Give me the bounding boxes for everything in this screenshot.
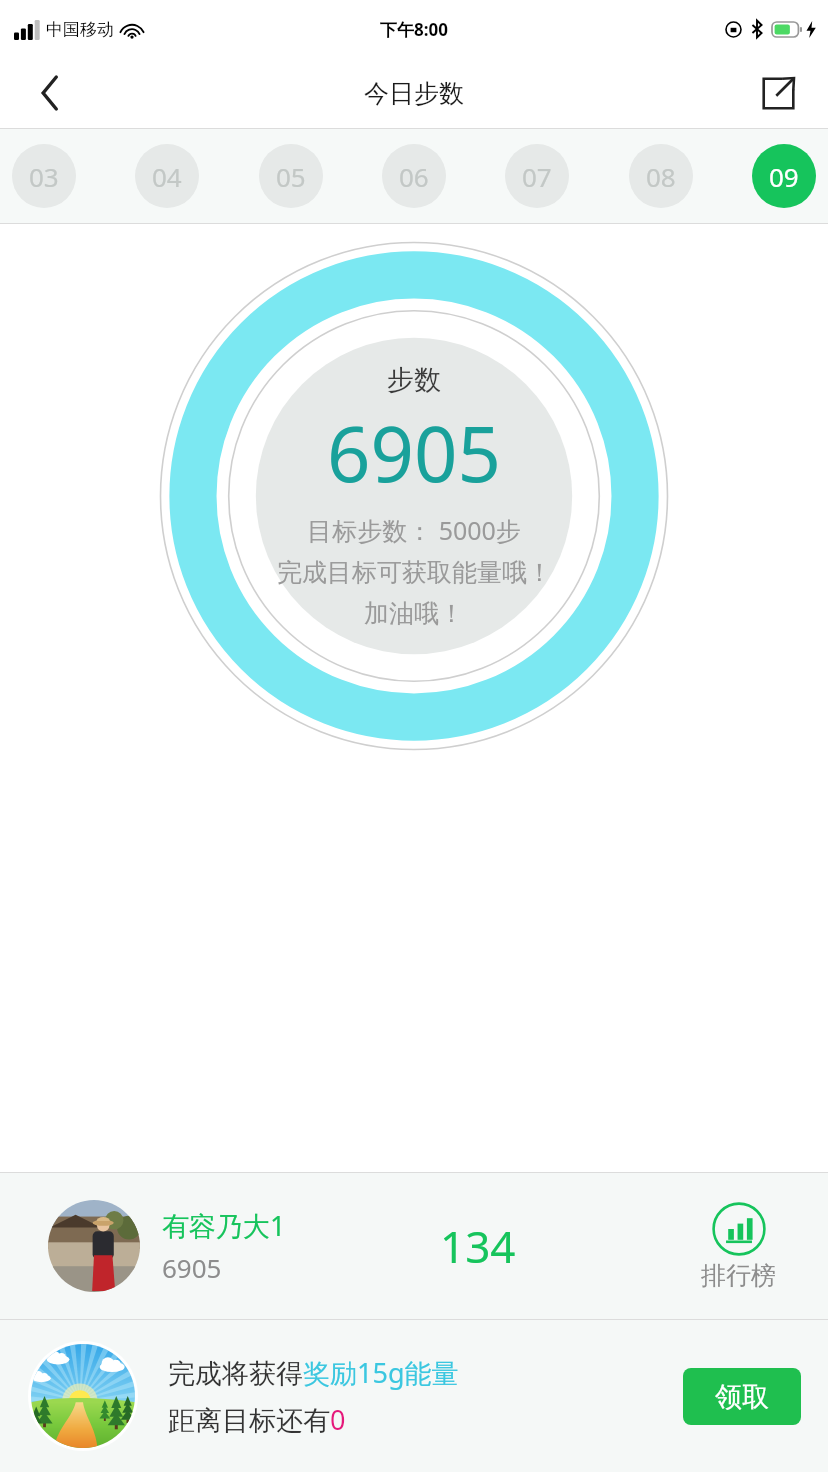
staticText: 08 [646,159,676,194]
staticText: 今日步数 [364,78,464,109]
button[interactable]: 排行榜 [693,1198,784,1295]
staticText: 领取 [715,1380,769,1414]
button[interactable]: 09 [752,144,816,208]
staticText: 07 [522,159,552,194]
button[interactable]: 07 [505,144,569,208]
staticText: 完成目标可获取能量哦！ [277,557,552,588]
button[interactable]: Back [22,65,78,121]
button[interactable]: 05 [259,144,323,208]
button[interactable]: 08 [629,144,693,208]
staticText: 加油哦！ [364,598,464,629]
staticText: 03 [29,159,59,194]
staticText: 6905 [162,1250,222,1285]
staticText: 06 [399,159,429,194]
staticText: 有容乃大1 [162,1207,286,1244]
staticText: 下午8:00 [380,18,448,41]
staticText: 04 [152,159,182,194]
button[interactable]: 03 [12,144,76,208]
staticText: 完成将获得奖励15g能量 [168,1354,459,1391]
staticText: 步数 [387,363,441,397]
staticText: 09 [769,159,799,194]
button[interactable]: 06 [382,144,446,208]
staticText: 05 [276,159,306,194]
staticText: 目标步数： 5000步 [307,513,521,547]
staticText: 6905 [327,401,501,505]
button[interactable]: 领取 [683,1368,801,1425]
button[interactable]: 04 [135,144,199,208]
button[interactable]: Share [750,65,806,121]
staticText: 中国移动 [46,19,114,40]
staticText: 134 [440,1216,516,1276]
staticText: 排行榜 [701,1260,776,1291]
staticText: 距离目标还有0 [168,1401,346,1438]
button[interactable]: 有容乃大1 [0,1173,828,1319]
